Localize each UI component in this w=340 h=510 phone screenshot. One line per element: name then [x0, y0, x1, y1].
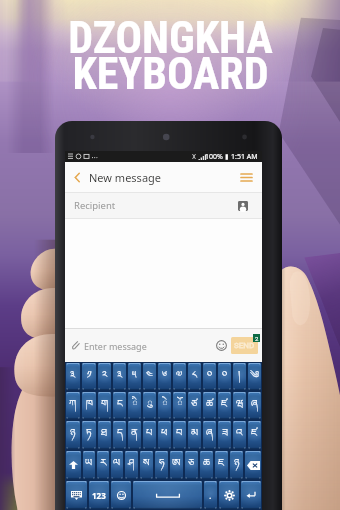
button[interactable]: [233, 421, 246, 449]
button[interactable]: Emoji: [213, 337, 230, 354]
button[interactable]: [128, 392, 141, 419]
button[interactable]: [98, 392, 111, 419]
button[interactable]: [158, 363, 171, 390]
button[interactable]: [66, 392, 80, 419]
staticText: ༢: [102, 363, 108, 390]
button[interactable]: [113, 392, 126, 419]
staticText: 1:51 AM: [231, 152, 258, 162]
button[interactable]: [113, 421, 126, 449]
button[interactable]: backspace: [245, 451, 261, 479]
staticText: Recipient: [74, 199, 116, 212]
button[interactable]: [83, 451, 95, 479]
button[interactable]: [233, 363, 246, 390]
button[interactable]: [82, 421, 96, 449]
button[interactable]: [170, 451, 183, 479]
button[interactable]: [248, 363, 261, 390]
button[interactable]: [125, 451, 138, 479]
button[interactable]: [233, 392, 246, 419]
staticText: ཧ: [159, 451, 165, 479]
button[interactable]: [128, 421, 141, 449]
staticText: ཛ: [221, 392, 228, 419]
button[interactable]: [143, 392, 156, 419]
staticText: ཅ: [188, 451, 195, 479]
staticText: ཞ: [206, 421, 213, 449]
button[interactable]: [173, 363, 186, 390]
staticText: ༥: [132, 363, 137, 390]
button[interactable]: [66, 363, 80, 390]
button[interactable]: 123: [89, 481, 109, 509]
button[interactable]: [188, 421, 201, 449]
staticText: KEYBOARD: [72, 48, 269, 100]
staticText: ཉ: [70, 421, 76, 449]
button[interactable]: [113, 363, 126, 390]
button[interactable]: [203, 392, 216, 419]
button[interactable]: [248, 392, 261, 419]
button[interactable]: [155, 451, 168, 479]
button[interactable]: [173, 392, 186, 419]
button[interactable]: [158, 421, 171, 449]
button[interactable]: SEND: [231, 337, 258, 354]
button[interactable]: [203, 421, 216, 449]
button[interactable]: [98, 421, 111, 449]
staticText: New message: [89, 170, 162, 185]
button[interactable]: [230, 451, 243, 479]
staticText: ཇ: [218, 451, 225, 479]
staticText: ༡: [87, 363, 92, 390]
button[interactable]: emoji: [111, 481, 131, 509]
button[interactable]: [185, 451, 198, 479]
staticText: ༧: [176, 363, 183, 390]
staticText: ཐ: [101, 421, 108, 449]
button[interactable]: space: [133, 481, 202, 509]
button[interactable]: [188, 363, 201, 390]
button[interactable]: [143, 421, 156, 449]
button[interactable]: [173, 421, 186, 449]
button[interactable]: [188, 392, 201, 419]
staticText: ཞ: [251, 392, 258, 419]
staticText: ར: [100, 451, 107, 479]
button[interactable]: [128, 363, 141, 390]
staticText: འ: [236, 421, 243, 449]
staticText: ཉ: [234, 451, 240, 479]
button[interactable]: dot: [204, 481, 217, 509]
button[interactable]: [82, 392, 96, 419]
staticText: 100%: [205, 152, 223, 162]
staticText: །: [238, 363, 241, 390]
button[interactable]: [218, 421, 231, 449]
button[interactable]: [97, 451, 109, 479]
staticText: ཀ: [69, 392, 77, 419]
button[interactable]: enter: [241, 481, 261, 509]
staticText: ༨: [192, 363, 198, 390]
staticText: ཙ: [191, 392, 198, 419]
staticText: ༤: [146, 363, 153, 390]
staticText: ཨ: [172, 451, 181, 479]
staticText: ག: [101, 392, 109, 419]
button[interactable]: [203, 363, 216, 390]
button[interactable]: [200, 451, 213, 479]
button[interactable]: shift: [66, 451, 81, 479]
button[interactable]: Recipient: [65, 193, 262, 218]
button[interactable]: [158, 392, 171, 419]
button[interactable]: [215, 451, 228, 479]
staticText: .: [209, 489, 212, 501]
staticText: 2: [255, 335, 259, 342]
button[interactable]: [98, 363, 111, 390]
staticText: ༠: [222, 363, 228, 390]
button[interactable]: Back: [65, 162, 89, 192]
button[interactable]: [111, 451, 123, 479]
staticText: ོ: [177, 392, 183, 419]
staticText: ཚ: [206, 392, 214, 419]
button[interactable]: kb: [66, 481, 87, 509]
button[interactable]: Menu: [233, 162, 259, 192]
button[interactable]: [143, 363, 156, 390]
button[interactable]: Choose contact: [233, 196, 253, 216]
button[interactable]: [82, 363, 96, 390]
staticText: ཁ: [86, 392, 93, 419]
button[interactable]: [140, 451, 153, 479]
button[interactable]: [248, 421, 261, 449]
button[interactable]: gear: [219, 481, 239, 509]
button[interactable]: [218, 392, 231, 419]
staticText: ཕ: [161, 421, 168, 449]
button[interactable]: [66, 421, 80, 449]
button[interactable]: Attach: [69, 338, 84, 353]
button[interactable]: [218, 363, 231, 390]
